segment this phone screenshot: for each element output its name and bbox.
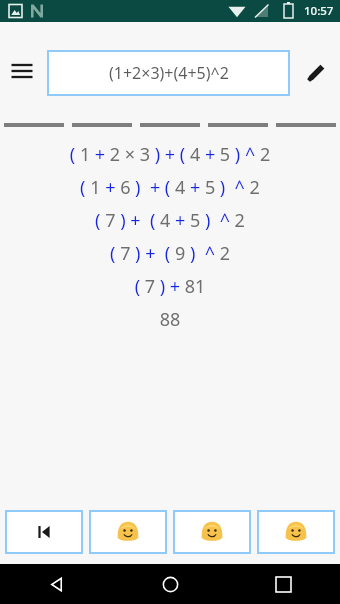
button[interactable]: Restart	[5, 510, 83, 554]
staticText: 10:57	[304, 3, 334, 19]
button[interactable]: Menu	[4, 53, 40, 89]
staticText: ( 1 + 2 × 3 ) + ( 4 + 5 ) ^ 2	[0, 142, 340, 167]
button[interactable]: Recents	[227, 564, 340, 604]
staticText: ( 7 ) + ( 9 ) ^ 2	[0, 241, 340, 266]
button[interactable]: Step 1	[89, 510, 167, 554]
button[interactable]: (1+2×3)+(4+5)^2	[47, 50, 290, 96]
staticText: ( 7 ) + 81	[0, 274, 340, 299]
button[interactable]: Edit	[296, 53, 336, 93]
button[interactable]: Step 3	[257, 510, 335, 554]
staticText: 88	[0, 307, 340, 332]
button[interactable]: Back	[0, 564, 114, 604]
staticText: ( 7 ) + ( 4 + 5 ) ^ 2	[0, 208, 340, 233]
staticText: (1+2×3)+(4+5)^2	[109, 62, 229, 84]
button[interactable]: Step 2	[173, 510, 251, 554]
staticText: ( 1 + 6 ) + ( 4 + 5 ) ^ 2	[0, 175, 340, 200]
button[interactable]: Home	[114, 564, 227, 604]
